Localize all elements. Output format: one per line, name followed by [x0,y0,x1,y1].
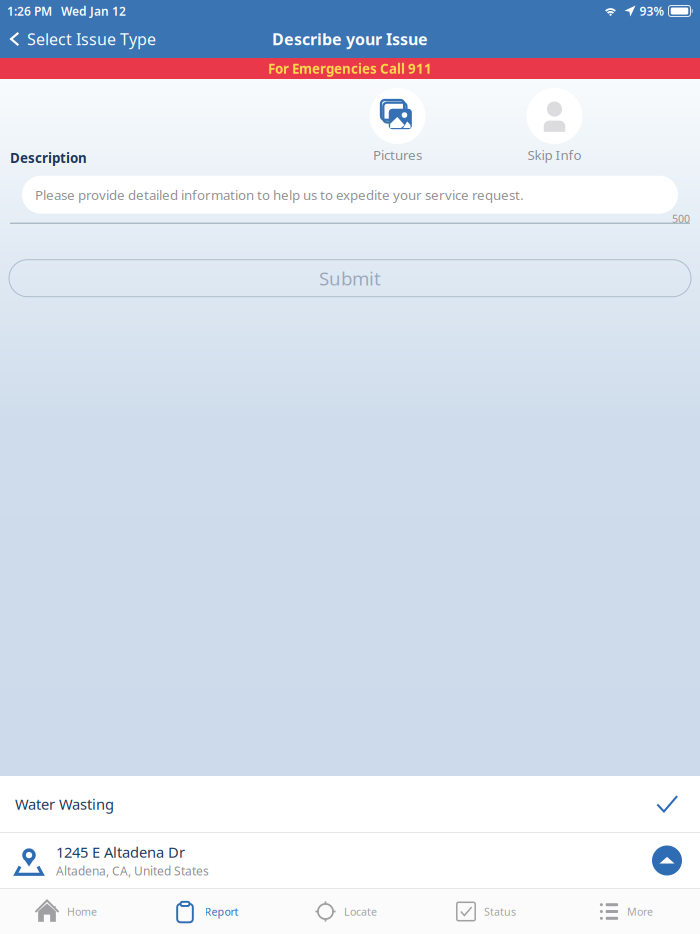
button[interactable]: Submit [9,260,691,297]
button[interactable]: Home [0,889,140,934]
button[interactable]: Pictures [342,88,452,164]
button[interactable]: Status [420,889,560,934]
staticText: Wed Jan 12 [61,3,126,19]
staticText: Pictures [373,146,422,164]
staticText: Water Wasting [15,794,114,814]
staticText: 1:26 PM [7,3,52,19]
staticText: Locate [344,904,377,919]
staticText: Please provide detailed information to h… [35,186,524,204]
staticText: Select Issue Type [27,28,156,50]
staticText: Report [204,904,238,919]
button[interactable]: Report [140,889,280,934]
staticText: Describe your Issue [272,28,428,50]
button[interactable]: Water Wasting [0,776,700,832]
staticText: Skip Info [527,146,581,164]
button[interactable]: Skip Info [499,88,609,164]
staticText: 500 [672,212,690,226]
button[interactable]: Select Issue Type [0,23,156,55]
staticText: Description [10,149,87,167]
staticText: Home [67,904,97,919]
staticText: Altadena, CA, United States [56,863,209,879]
staticText: 93% [639,3,664,19]
button[interactable]: 1245 E Altadena Dr [0,833,700,888]
button[interactable]: Locate [280,889,420,934]
staticText: Submit [319,266,381,291]
staticText: 1245 E Altadena Dr [56,842,185,862]
staticText: More [627,904,653,919]
button[interactable]: More [560,889,700,934]
staticText: For Emergencies Call 911 [268,60,432,77]
staticText: Status [484,904,516,919]
